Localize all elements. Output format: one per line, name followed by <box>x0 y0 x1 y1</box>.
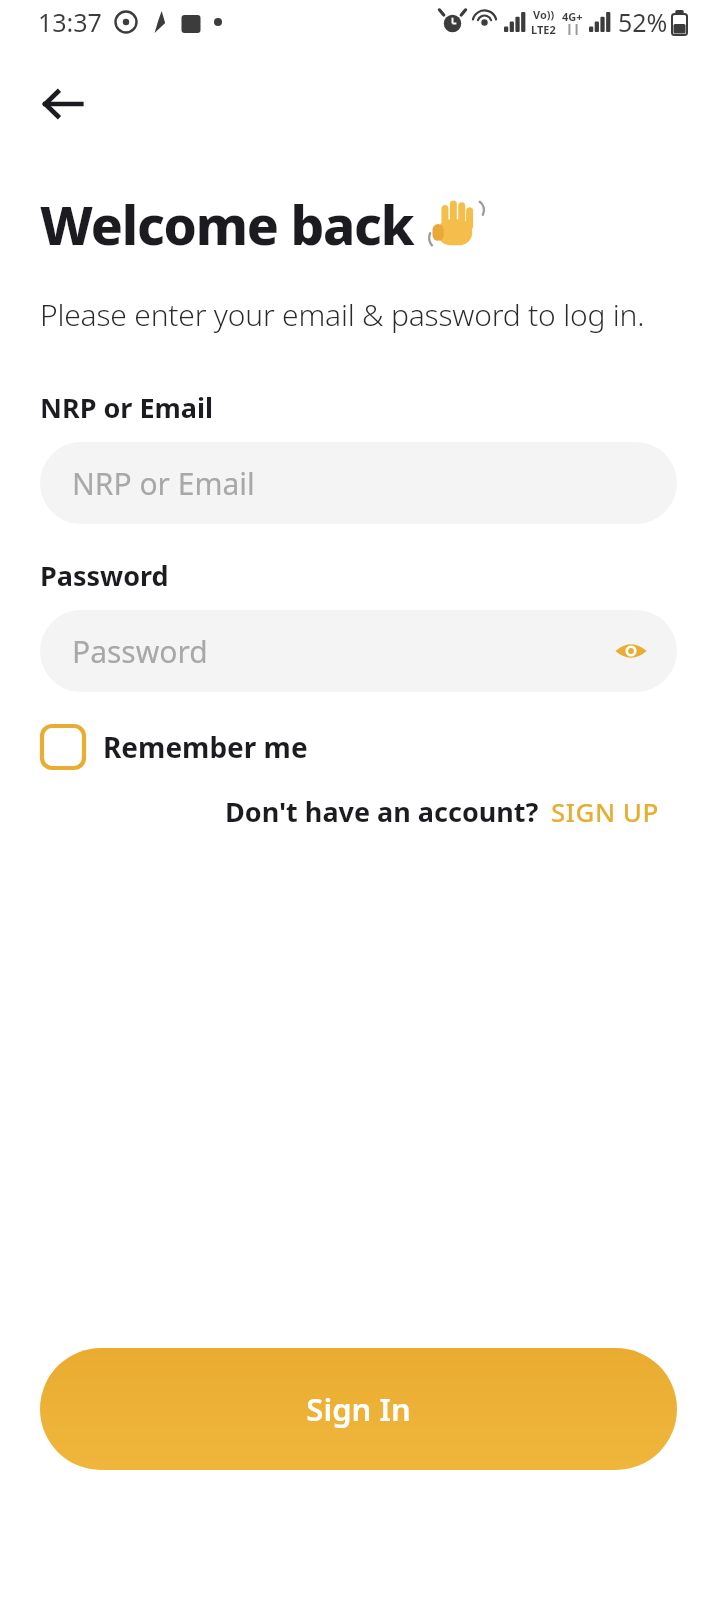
staticText: Vo)) <box>533 7 555 22</box>
staticText: Don't have an account? <box>225 793 539 830</box>
staticText: 13:37 <box>38 5 102 39</box>
staticText: SIGN UP <box>551 794 659 829</box>
button[interactable]: Password <box>40 610 677 692</box>
staticText: Welcome back <box>40 188 414 260</box>
button[interactable]: Remember me <box>36 718 320 776</box>
staticText: Password <box>40 557 169 594</box>
button[interactable]: Show password <box>607 627 655 675</box>
staticText: Please enter your email & password to lo… <box>40 294 645 335</box>
staticText: NRP or Email <box>40 389 214 426</box>
staticText: Sign In <box>306 1388 411 1430</box>
button[interactable]: Sign In <box>40 1348 677 1470</box>
button[interactable]: SIGN UP <box>549 790 661 833</box>
staticText: NRP or Email <box>72 463 255 504</box>
staticText: Password <box>72 631 208 672</box>
button[interactable]: NRP or Email <box>40 442 677 524</box>
staticText: 4G+ <box>562 9 583 24</box>
staticText: Remember me <box>103 728 308 766</box>
button[interactable]: Back <box>30 72 94 136</box>
staticText: LTE2 <box>531 22 556 37</box>
staticText: 52% <box>618 5 668 39</box>
